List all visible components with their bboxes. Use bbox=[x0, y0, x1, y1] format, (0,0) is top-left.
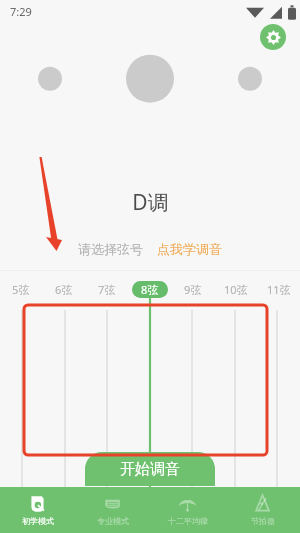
staticText: 节拍器 bbox=[251, 516, 275, 526]
staticText: 7弦 bbox=[98, 282, 116, 297]
button[interactable]: 8弦 bbox=[128, 280, 171, 298]
staticText: 开始调音 bbox=[120, 460, 180, 479]
button[interactable]: 9弦 bbox=[171, 280, 214, 298]
button[interactable]: 5弦 bbox=[0, 280, 42, 298]
staticText: 10弦 bbox=[224, 282, 248, 297]
button[interactable]: 6弦 bbox=[42, 280, 85, 298]
button[interactable]: 请选择弦号 bbox=[78, 241, 143, 257]
button[interactable]: 初学模式 bbox=[0, 487, 75, 533]
staticText: D调 bbox=[132, 188, 169, 217]
button[interactable]: 10弦 bbox=[214, 280, 257, 298]
button[interactable]: D调 bbox=[0, 184, 300, 220]
staticText: 十二平均律 bbox=[168, 516, 208, 526]
staticText: 11弦 bbox=[267, 282, 291, 297]
staticText: 初学模式 bbox=[22, 516, 54, 526]
staticText: 7:29 bbox=[10, 4, 32, 19]
staticText: 5弦 bbox=[12, 282, 30, 297]
button[interactable]: 专业模式 bbox=[75, 487, 150, 533]
staticText: 专业模式 bbox=[97, 516, 129, 526]
button[interactable]: 十二平均律 bbox=[150, 487, 225, 533]
button[interactable]: 11弦 bbox=[257, 280, 300, 298]
staticText: 8弦 bbox=[141, 282, 159, 297]
staticText: 点我学调音 bbox=[157, 241, 222, 257]
button[interactable]: 节拍器 bbox=[225, 487, 300, 533]
staticText: 9弦 bbox=[184, 282, 202, 297]
staticText: 请选择弦号 bbox=[78, 241, 143, 257]
button[interactable]: 开始调音 bbox=[85, 452, 215, 486]
staticText: 6弦 bbox=[55, 282, 73, 297]
button[interactable]: Settings bbox=[260, 24, 286, 50]
button[interactable]: 点我学调音 bbox=[157, 241, 222, 257]
button[interactable]: 7弦 bbox=[85, 280, 128, 298]
